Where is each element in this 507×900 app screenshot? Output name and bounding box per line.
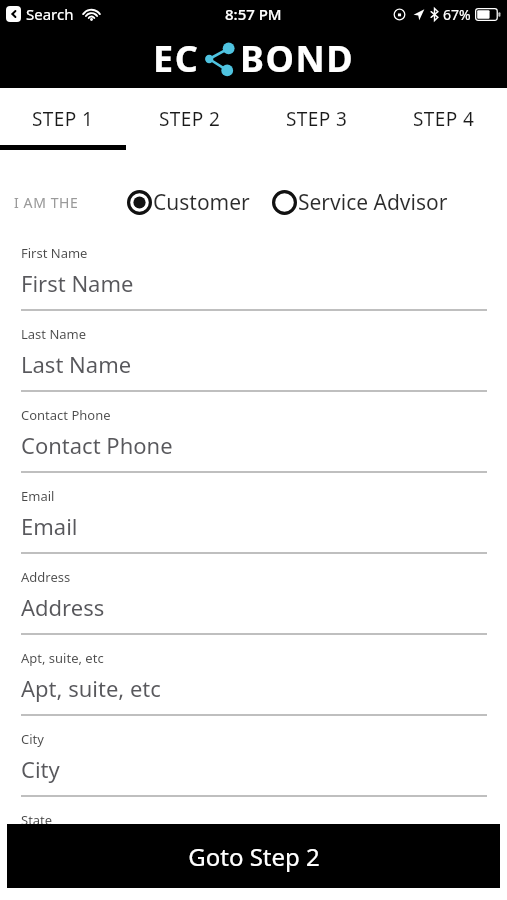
staticText: Goto Step 2 — [188, 840, 320, 873]
button[interactable]: Apt, suite, etc — [0, 643, 507, 724]
staticText: First Name — [21, 268, 134, 298]
staticText: Email — [21, 511, 78, 541]
button[interactable]: City — [0, 724, 507, 805]
button[interactable]: State — [0, 805, 507, 886]
button[interactable]: Address — [0, 562, 507, 643]
button[interactable]: Email — [0, 481, 507, 562]
staticText: Last Name — [21, 349, 132, 379]
button[interactable]: Contact Phone — [0, 400, 507, 481]
staticText: First Name — [21, 244, 88, 262]
staticText: STEP 3 — [286, 106, 348, 132]
staticText: Search — [26, 4, 74, 24]
staticText: EC — [153, 34, 200, 83]
button[interactable]: Goto Step 2 — [7, 824, 500, 888]
staticText: STEP 1 — [32, 106, 94, 132]
staticText: Contact Phone — [21, 430, 173, 460]
staticText: Address — [21, 592, 105, 622]
button[interactable]: STEP 2 — [126, 88, 253, 150]
staticText: State — [21, 811, 53, 829]
staticText: Contact Phone — [21, 406, 111, 424]
button[interactable]: Customer — [126, 188, 250, 217]
button[interactable]: Service Advisor — [271, 188, 448, 217]
staticText: Last Name — [21, 325, 87, 343]
staticText: Customer — [153, 188, 250, 217]
staticText: STEP 4 — [413, 106, 475, 132]
button[interactable]: STEP 1 — [0, 88, 126, 150]
staticText: City — [21, 754, 60, 784]
staticText: City — [21, 730, 44, 748]
staticText: Address — [21, 568, 71, 586]
button[interactable]: First Name — [0, 238, 507, 319]
button[interactable]: STEP 4 — [380, 88, 507, 150]
staticText: BOND — [240, 34, 355, 83]
staticText: 8:57 PM — [225, 4, 282, 24]
staticText: Service Advisor — [298, 188, 448, 217]
staticText: Apt, suite, etc — [21, 649, 104, 667]
staticText: I AM THE — [14, 193, 79, 212]
staticText: STEP 2 — [159, 106, 221, 132]
button[interactable]: Last Name — [0, 319, 507, 400]
button[interactable]: STEP 3 — [253, 88, 380, 150]
staticText: Email — [21, 487, 55, 505]
staticText: Apt, suite, etc — [21, 673, 161, 703]
staticText: 67% — [443, 5, 471, 24]
